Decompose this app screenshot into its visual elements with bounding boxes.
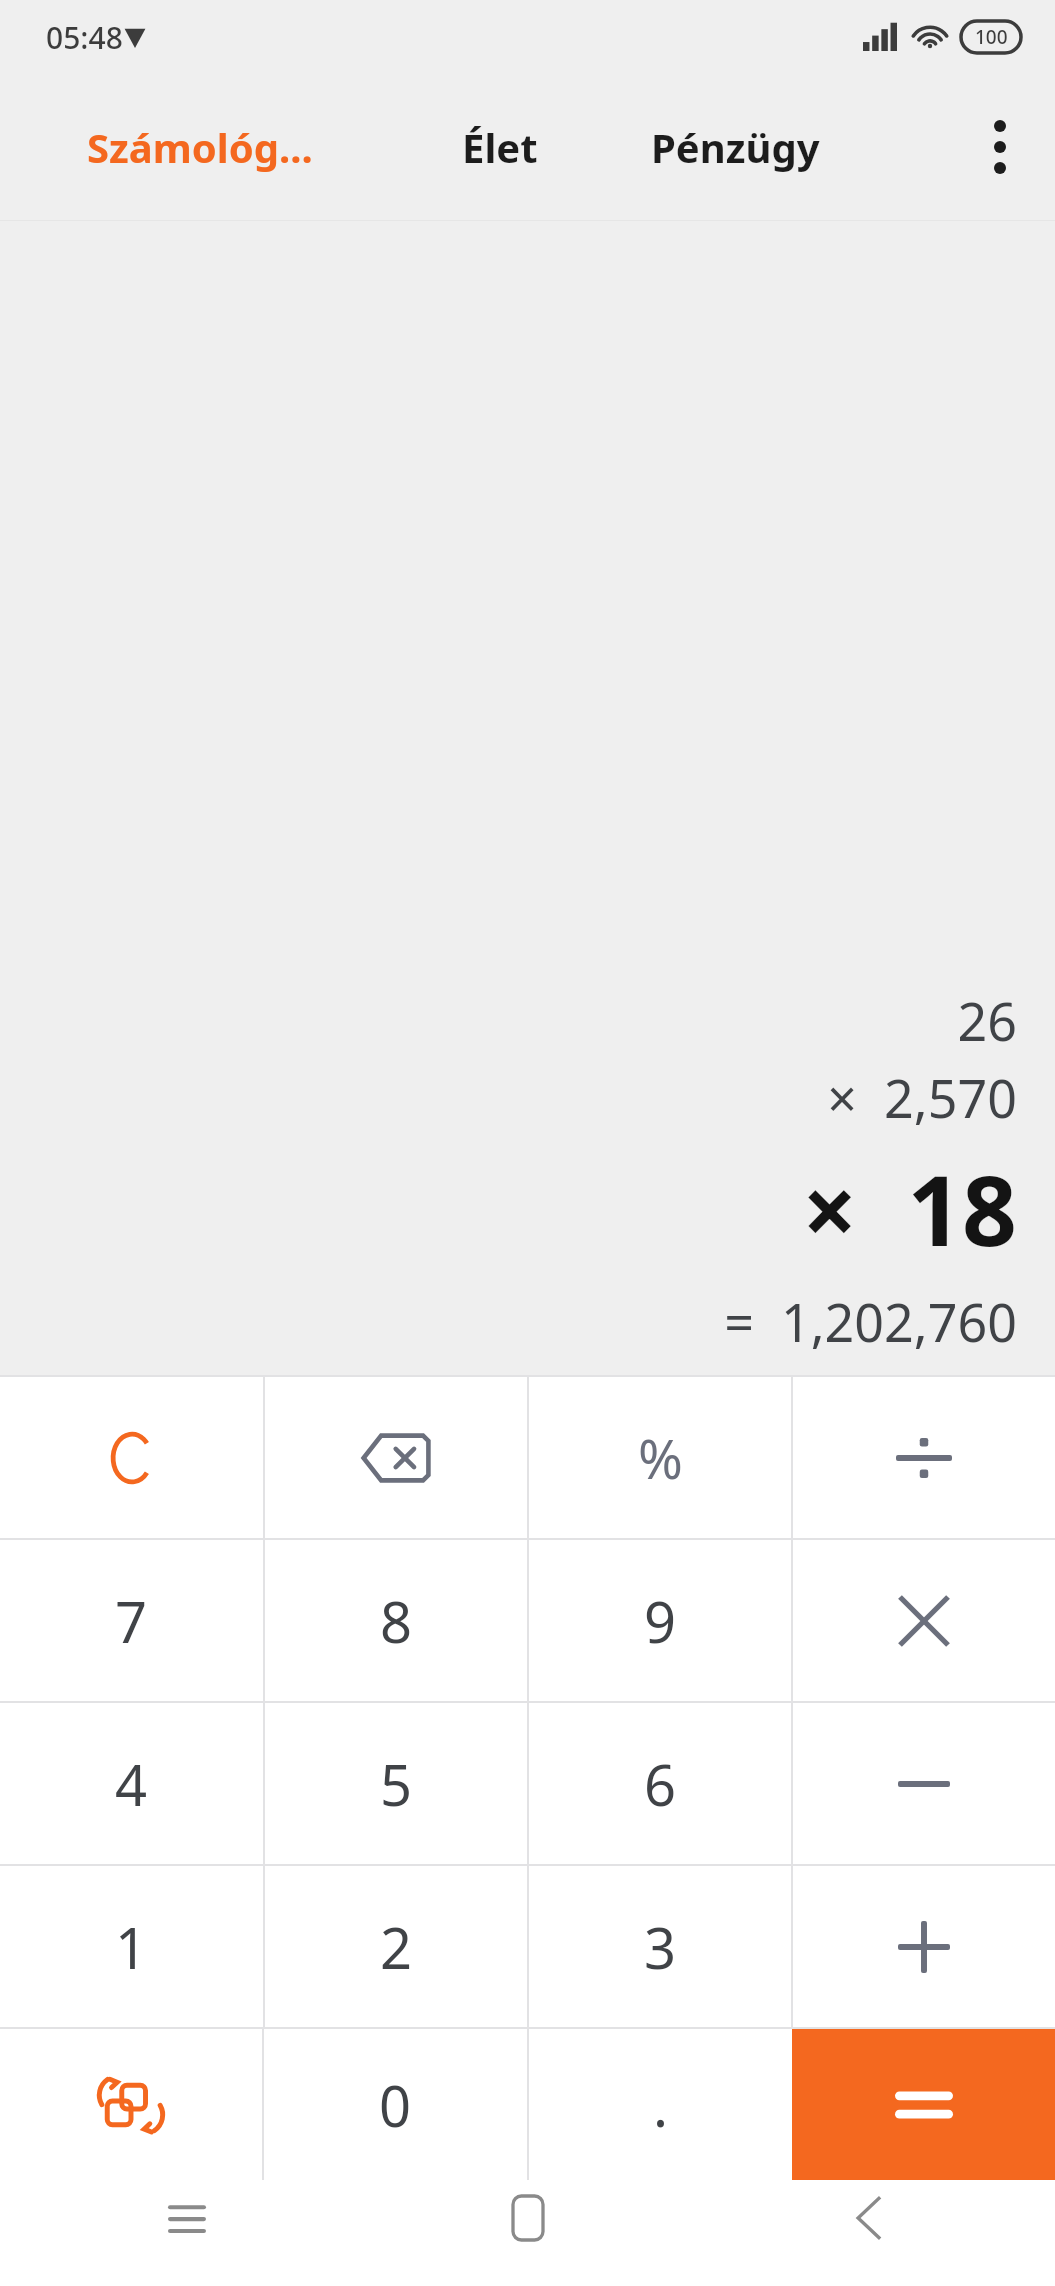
button[interactable]: Számológ... bbox=[0, 74, 400, 220]
button[interactable]: 9 bbox=[529, 1540, 791, 1701]
staticText: 9 bbox=[644, 1583, 677, 1659]
button[interactable]: Unit converter bbox=[0, 2029, 262, 2180]
button[interactable]: Clear bbox=[0, 1377, 263, 1538]
button[interactable]: Backspace bbox=[265, 1377, 527, 1538]
staticText: 100 bbox=[975, 24, 1008, 50]
button[interactable]: 2 bbox=[265, 1866, 527, 2027]
staticText: 26 bbox=[957, 985, 1017, 1056]
button[interactable]: Recent apps bbox=[132, 2180, 242, 2256]
button[interactable]: 5 bbox=[265, 1703, 527, 1864]
button[interactable]: 7 bbox=[0, 1540, 263, 1701]
staticText: 4 bbox=[115, 1746, 148, 1822]
button[interactable]: Home bbox=[473, 2180, 583, 2256]
staticText: 7 bbox=[115, 1583, 148, 1659]
button[interactable]: 4 bbox=[0, 1703, 263, 1864]
staticText: 3 bbox=[644, 1909, 677, 1985]
button[interactable]: More options bbox=[945, 74, 1055, 220]
staticText: . bbox=[653, 2067, 669, 2143]
button[interactable]: . bbox=[529, 2029, 792, 2180]
staticText: 0 bbox=[379, 2067, 412, 2143]
button[interactable]: 8 bbox=[265, 1540, 527, 1701]
staticText: Pénzügy bbox=[651, 120, 820, 174]
button[interactable]: 6 bbox=[529, 1703, 791, 1864]
button[interactable]: 0 bbox=[264, 2029, 527, 2180]
button[interactable]: Plus bbox=[793, 1866, 1055, 2027]
staticText: 8 bbox=[380, 1583, 413, 1659]
staticText: = 1,202,760 bbox=[724, 1286, 1017, 1357]
staticText: 2 bbox=[380, 1909, 413, 1985]
button[interactable]: Pénzügy bbox=[600, 74, 870, 220]
staticText: Élet bbox=[462, 120, 538, 174]
button[interactable]: Minus bbox=[793, 1703, 1055, 1864]
staticText: 5 bbox=[380, 1746, 413, 1822]
staticText: Számológ... bbox=[87, 120, 313, 174]
staticText: 1 bbox=[115, 1909, 148, 1985]
button[interactable]: 1 bbox=[0, 1866, 263, 2027]
staticText: × 18 bbox=[802, 1143, 1017, 1274]
button[interactable]: Equals bbox=[792, 2029, 1055, 2180]
staticText: × 2,570 bbox=[827, 1062, 1017, 1133]
button[interactable]: 3 bbox=[529, 1866, 791, 2027]
button[interactable]: Divide bbox=[793, 1377, 1055, 1538]
button[interactable]: Back bbox=[813, 2180, 923, 2256]
staticText: 6 bbox=[644, 1746, 677, 1822]
staticText: 05:48 bbox=[46, 17, 123, 58]
staticText: % bbox=[638, 1421, 683, 1495]
button[interactable]: Élet bbox=[400, 74, 600, 220]
button[interactable]: Percent bbox=[529, 1377, 791, 1538]
button[interactable]: Multiply bbox=[793, 1540, 1055, 1701]
